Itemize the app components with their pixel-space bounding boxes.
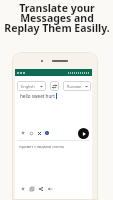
button[interactable]: Clear	[36, 130, 42, 136]
button[interactable]: Microphone	[44, 130, 50, 136]
button[interactable]: History	[28, 130, 34, 136]
button[interactable]: Share	[38, 186, 44, 192]
staticText: hello sweet hurt	[20, 93, 55, 99]
button[interactable]: Speak	[47, 186, 53, 192]
staticText: English	[21, 84, 35, 89]
button[interactable]: Favourite	[20, 186, 26, 192]
button[interactable]: Russian	[63, 81, 91, 91]
staticText: привет сладкий олень	[19, 144, 65, 150]
button[interactable]: English	[17, 81, 46, 91]
staticText: Translate your Messages and Replay Them …	[4, 1, 110, 35]
button[interactable]: Favourite	[20, 130, 26, 136]
button[interactable]: Swap languages	[50, 81, 59, 91]
staticText: Russian	[67, 84, 82, 89]
button[interactable]: Copy	[29, 186, 35, 192]
button[interactable]: Play	[78, 128, 89, 139]
